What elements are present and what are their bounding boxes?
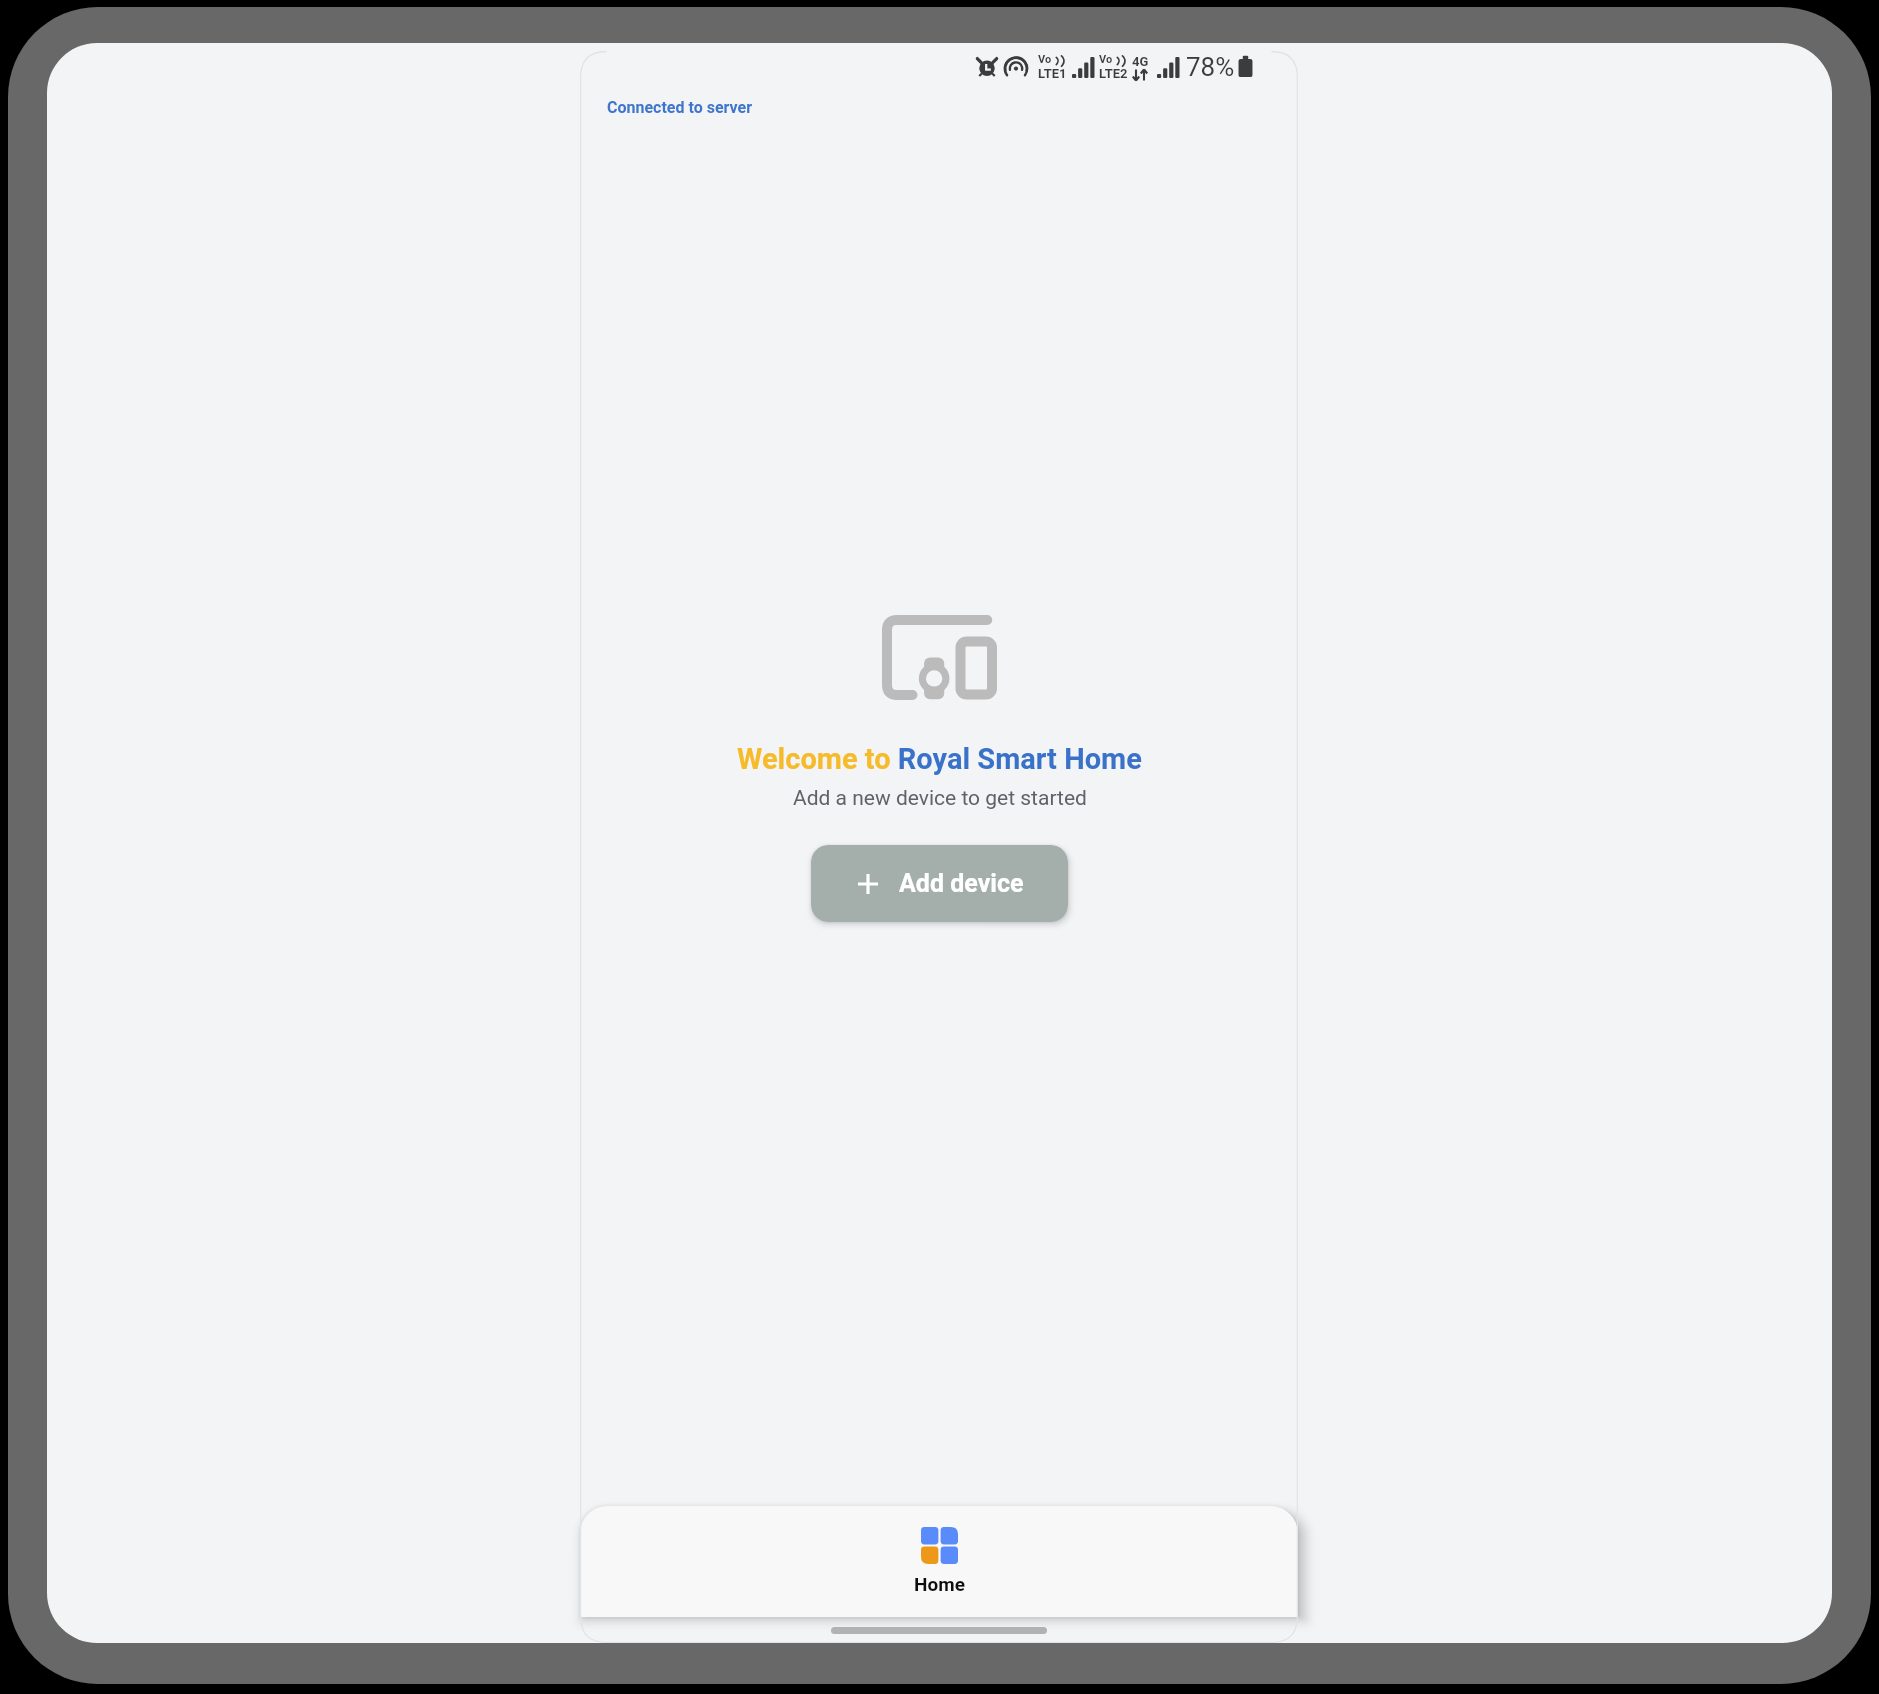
staticText: Connected to server — [607, 98, 753, 117]
staticText: Add device — [899, 869, 1024, 898]
other: Alarm set — [977, 55, 997, 79]
staticText: Vo — [1099, 53, 1113, 66]
staticText: Welcome to Royal Smart Home — [737, 742, 1142, 776]
other: Hotspot on — [1003, 54, 1029, 80]
staticText: Vo — [1038, 53, 1052, 66]
staticText: Add a new device to get started — [793, 786, 1087, 811]
staticText: 78% — [1186, 52, 1235, 82]
staticText: LTE2 — [1099, 66, 1128, 81]
staticText: Home — [914, 1573, 965, 1595]
staticText: LTE1 — [1038, 66, 1067, 81]
button[interactable]: Home tab — [580, 1506, 1298, 1617]
button[interactable]: Add device — [811, 845, 1068, 922]
staticText: 4G — [1132, 54, 1149, 69]
